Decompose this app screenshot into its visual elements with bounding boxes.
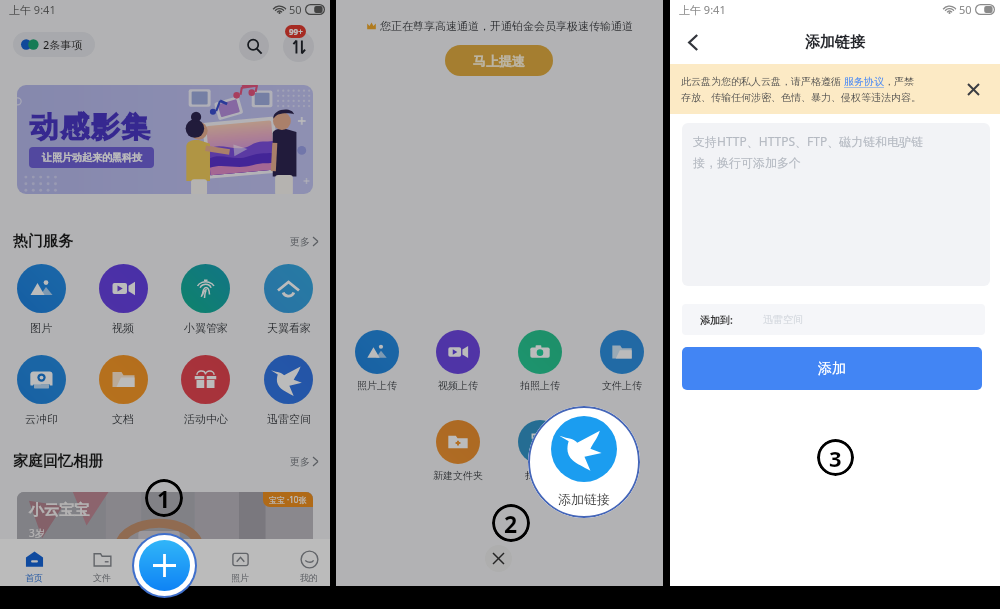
staticText: 动感影集 xyxy=(29,109,151,146)
staticText: 支持HTTP、HTTPS、FTP、磁力链和电驴链 接，换行可添加多个 xyxy=(693,133,924,170)
staticText: 服务协议 xyxy=(844,75,884,88)
button[interactable]: Close xyxy=(485,545,512,572)
button[interactable]: 更多 xyxy=(290,455,318,468)
staticText: 2条事项 xyxy=(43,37,83,52)
staticText: 图片 xyxy=(30,321,52,335)
staticText: 视频上传 xyxy=(438,379,478,392)
button[interactable]: 照片上传 xyxy=(336,330,417,392)
button[interactable]: 图片 xyxy=(0,264,82,335)
button[interactable]: Add xyxy=(132,533,197,598)
staticText: 让照片动起来的黑科技 xyxy=(42,151,142,164)
staticText: 50 xyxy=(959,2,972,17)
staticText: 拍照上传 xyxy=(520,379,560,392)
staticText: 更多 xyxy=(290,235,310,248)
staticText: 3 xyxy=(829,443,842,473)
button[interactable]: 动感影集 xyxy=(17,85,313,194)
staticText: 小翼管家 xyxy=(184,321,228,335)
staticText: 首页 xyxy=(25,572,43,583)
button[interactable]: Transfers xyxy=(283,31,314,62)
staticText: 2 xyxy=(504,508,518,539)
button[interactable]: 拍照上传 xyxy=(499,330,581,392)
button[interactable]: 文件上传 xyxy=(581,330,663,392)
button[interactable]: 添加 xyxy=(682,347,982,390)
staticText: 文件 xyxy=(93,572,111,583)
staticText: 更多 xyxy=(290,455,310,468)
staticText: 马上提速 xyxy=(473,53,525,69)
button[interactable]: 小云宝宝 xyxy=(17,492,313,546)
staticText: 您正在尊享高速通道，开通铂金会员享极速传输通道 xyxy=(380,19,633,33)
button[interactable]: 新建文件夹 xyxy=(417,420,499,482)
button[interactable]: 添加链接 xyxy=(528,406,640,518)
button[interactable]: Search xyxy=(239,31,269,61)
staticText: 上午 9:41 xyxy=(9,2,56,17)
button[interactable]: 支持HTTP、HTTPS、FTP、磁力链和电驴链 接，换行可添加多个 xyxy=(682,123,990,286)
button[interactable]: 照片 xyxy=(216,539,264,586)
button[interactable]: 首页 xyxy=(10,539,58,586)
staticText: 迅雷空间 xyxy=(763,313,803,326)
staticText: 云冲印 xyxy=(25,412,58,426)
button[interactable]: 热门服务 xyxy=(13,232,73,250)
staticText: 扫一扫 xyxy=(525,469,555,482)
staticText: 添加 xyxy=(818,360,846,378)
staticText: 照片 xyxy=(231,572,249,583)
staticText: 活动中心 xyxy=(184,412,228,426)
button[interactable]: 文档 xyxy=(82,355,164,426)
staticText: 文件上传 xyxy=(602,379,642,392)
button[interactable]: 更多 xyxy=(290,235,318,248)
staticText: 宝宝 ·10张 xyxy=(269,494,307,505)
staticText: 视频 xyxy=(112,321,134,335)
staticText: 3岁 xyxy=(29,526,45,540)
button[interactable]: 视频 xyxy=(82,264,164,335)
staticText: 新建文件夹 xyxy=(433,469,483,482)
staticText: 此云盘为您的私人云盘，请严格遵循 xyxy=(681,74,844,88)
staticText: 迅雷空间 xyxy=(267,412,311,426)
button[interactable]: 添加到: xyxy=(682,304,985,335)
button[interactable]: 视频上传 xyxy=(417,330,499,392)
button[interactable]: 迅雷空间 xyxy=(247,355,330,426)
staticText: 上午 9:41 xyxy=(679,2,726,17)
button[interactable]: 文件 xyxy=(78,539,126,586)
staticText: 照片上传 xyxy=(357,379,397,392)
button[interactable]: 马上提速 xyxy=(445,45,553,76)
staticText: 添加链接 xyxy=(805,33,865,52)
button[interactable]: Dismiss xyxy=(960,76,986,102)
button[interactable]: 家庭回忆相册 xyxy=(13,452,103,470)
staticText: ，严禁 xyxy=(884,75,914,88)
staticText: 天翼看家 xyxy=(267,321,311,335)
staticText: 我的 xyxy=(300,572,318,583)
staticText: 存放、传输任何涉密、色情、暴力、侵权等违法内容。 xyxy=(681,91,921,104)
staticText: 添加到: xyxy=(700,313,733,327)
staticText: 添加链接 xyxy=(558,491,610,507)
staticText: 1 xyxy=(157,483,171,514)
button[interactable]: 我的 xyxy=(285,539,333,586)
staticText: 文档 xyxy=(112,412,134,426)
staticText: 99+ xyxy=(289,26,303,37)
button[interactable]: Back xyxy=(679,28,707,56)
staticText: 小云宝宝 xyxy=(29,501,89,520)
button[interactable]: 云冲印 xyxy=(0,355,82,426)
button[interactable]: 天翼看家 xyxy=(247,264,330,335)
button[interactable]: 扫一扫 xyxy=(499,420,581,482)
button[interactable]: 小翼管家 xyxy=(164,264,247,335)
staticText: 50 xyxy=(289,2,302,17)
button[interactable]: 活动中心 xyxy=(164,355,247,426)
button[interactable]: 2条事项 xyxy=(13,32,95,57)
